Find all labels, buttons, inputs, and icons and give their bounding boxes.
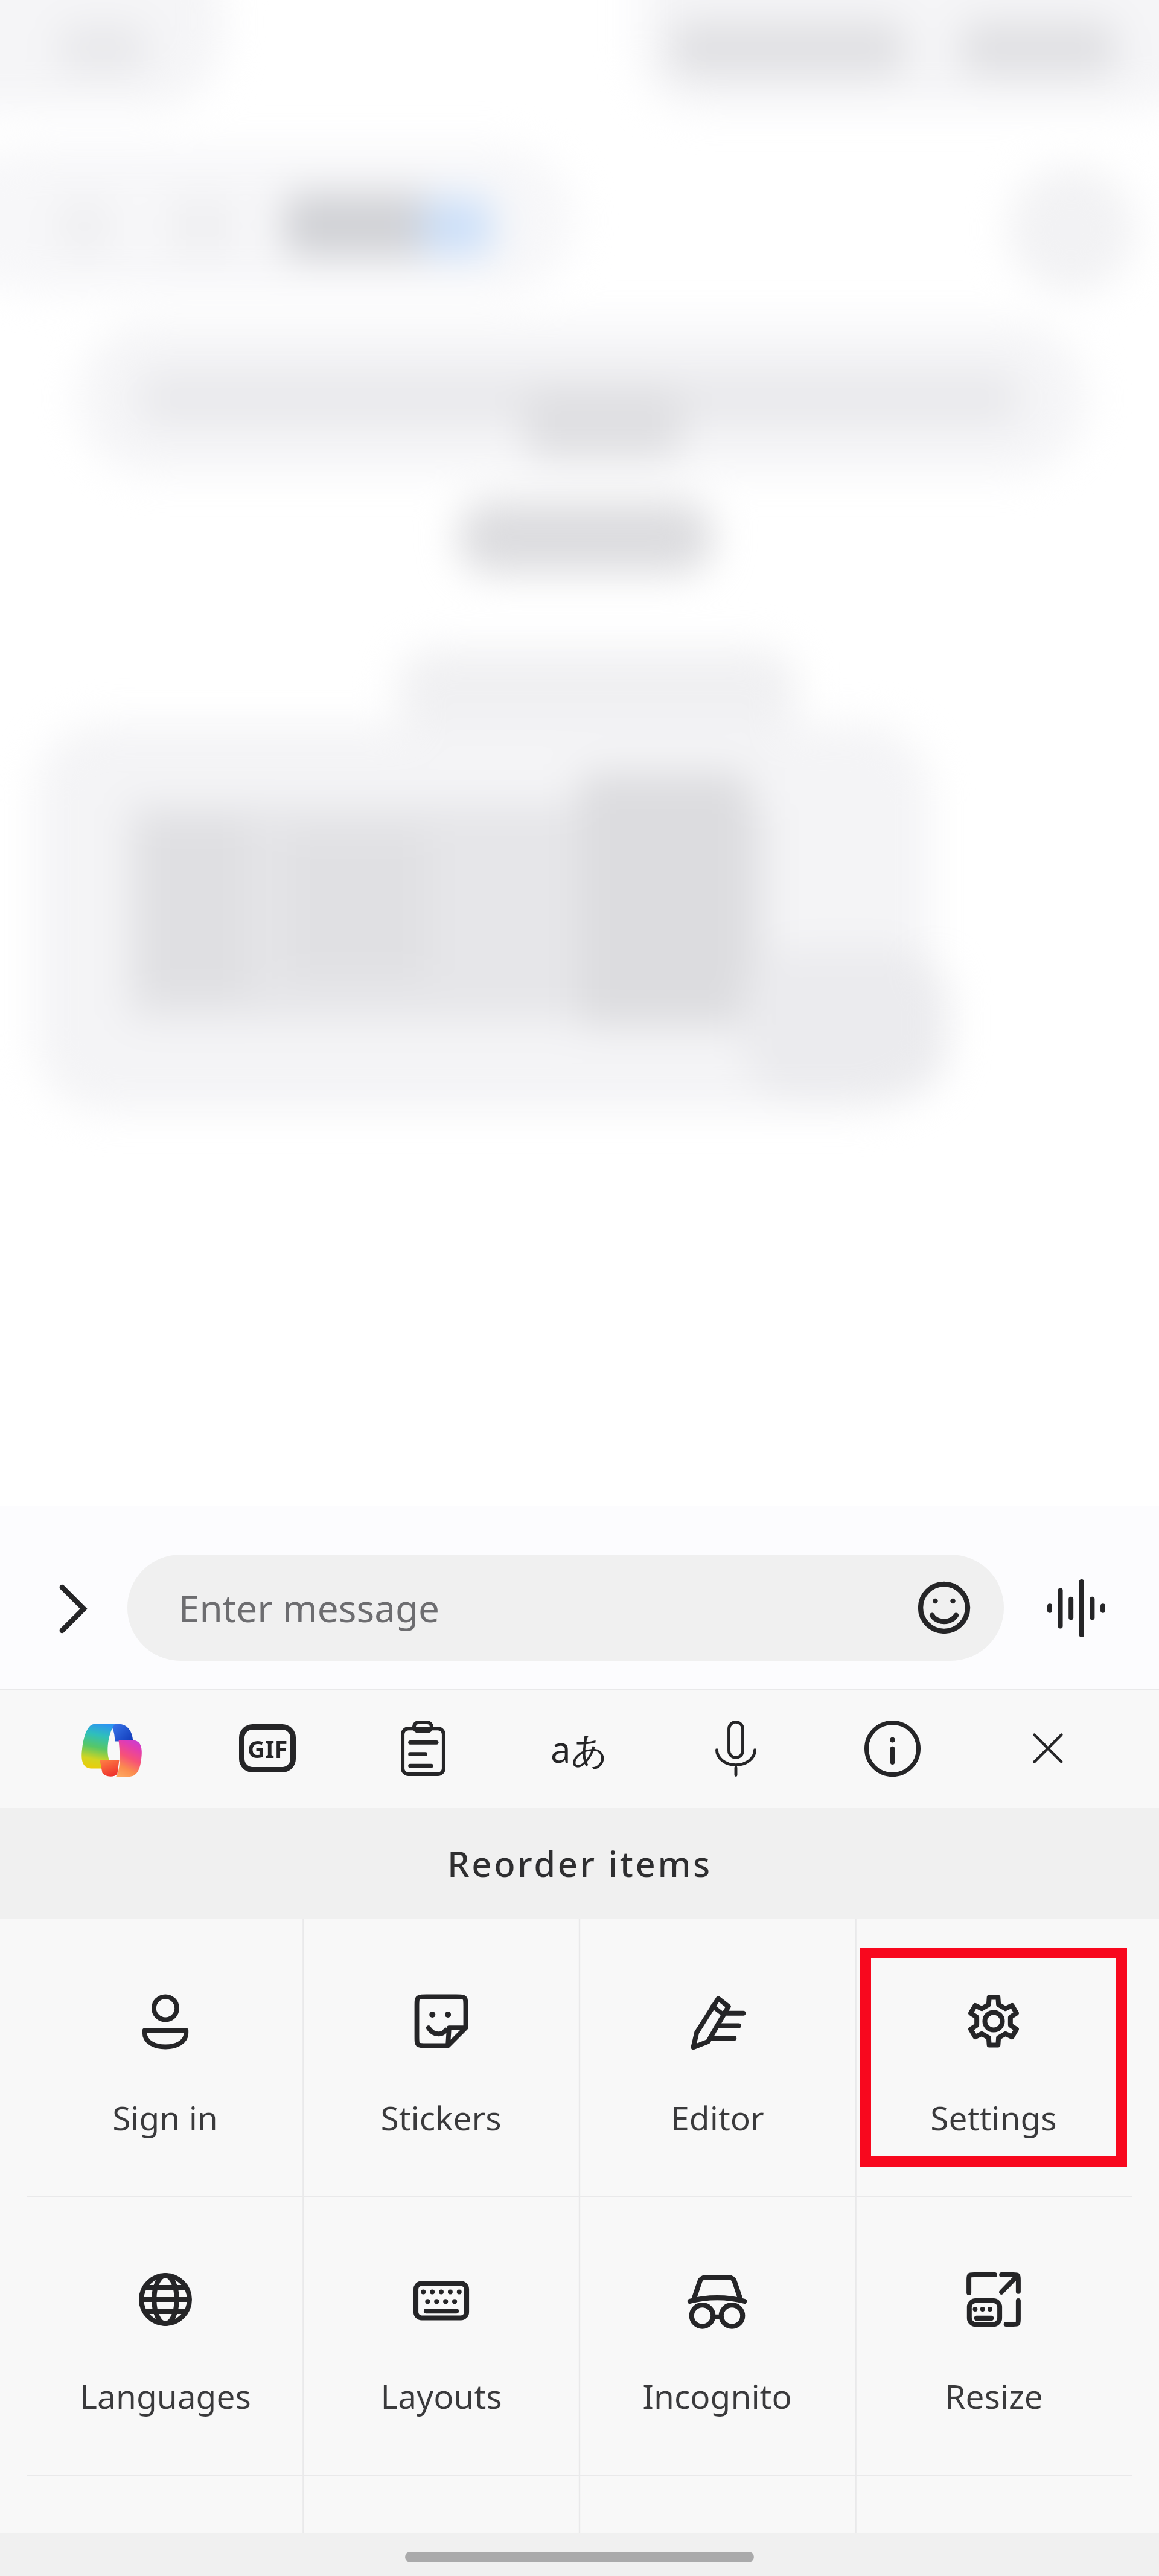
staticText: Sign in — [112, 2095, 218, 2140]
button[interactable]: Languages — [534, 1703, 625, 1794]
staticText: Stickers — [380, 2095, 502, 2140]
staticText: Incognito — [642, 2373, 792, 2418]
button[interactable]: Voice input — [691, 1703, 781, 1794]
button[interactable]: Resize — [855, 2197, 1132, 2475]
button[interactable]: Enter message — [127, 1555, 1004, 1661]
staticText: Layouts — [380, 2373, 502, 2418]
button[interactable]: Close — [1003, 1703, 1093, 1794]
button[interactable]: Editor — [579, 1919, 855, 2196]
staticText: aあ — [551, 1724, 608, 1772]
button[interactable]: Layouts — [303, 2197, 579, 2475]
staticText: Enter message — [179, 1582, 440, 1633]
button[interactable]: Expand toolbar — [33, 1570, 112, 1648]
staticText: GIF — [247, 1732, 288, 1765]
staticText: Settings — [930, 2095, 1057, 2140]
button[interactable]: Voice input — [1037, 1569, 1116, 1648]
button[interactable]: Emoji — [908, 1571, 980, 1644]
staticText: Resize — [945, 2373, 1043, 2418]
button[interactable]: Settings — [855, 1919, 1132, 2196]
button[interactable]: Incognito — [579, 2197, 855, 2475]
button[interactable]: Clipboard — [378, 1703, 468, 1794]
staticText: Reorder items — [447, 1839, 712, 1887]
button[interactable]: GIF — [222, 1703, 313, 1794]
staticText: Editor — [671, 2095, 764, 2140]
button[interactable]: Info — [847, 1703, 937, 1794]
staticText: Languages — [80, 2373, 251, 2418]
button[interactable]: Copilot — [66, 1703, 156, 1794]
button[interactable]: Languages — [27, 2197, 303, 2475]
button[interactable]: Stickers — [303, 1919, 579, 2196]
button[interactable]: Sign in — [27, 1919, 303, 2196]
